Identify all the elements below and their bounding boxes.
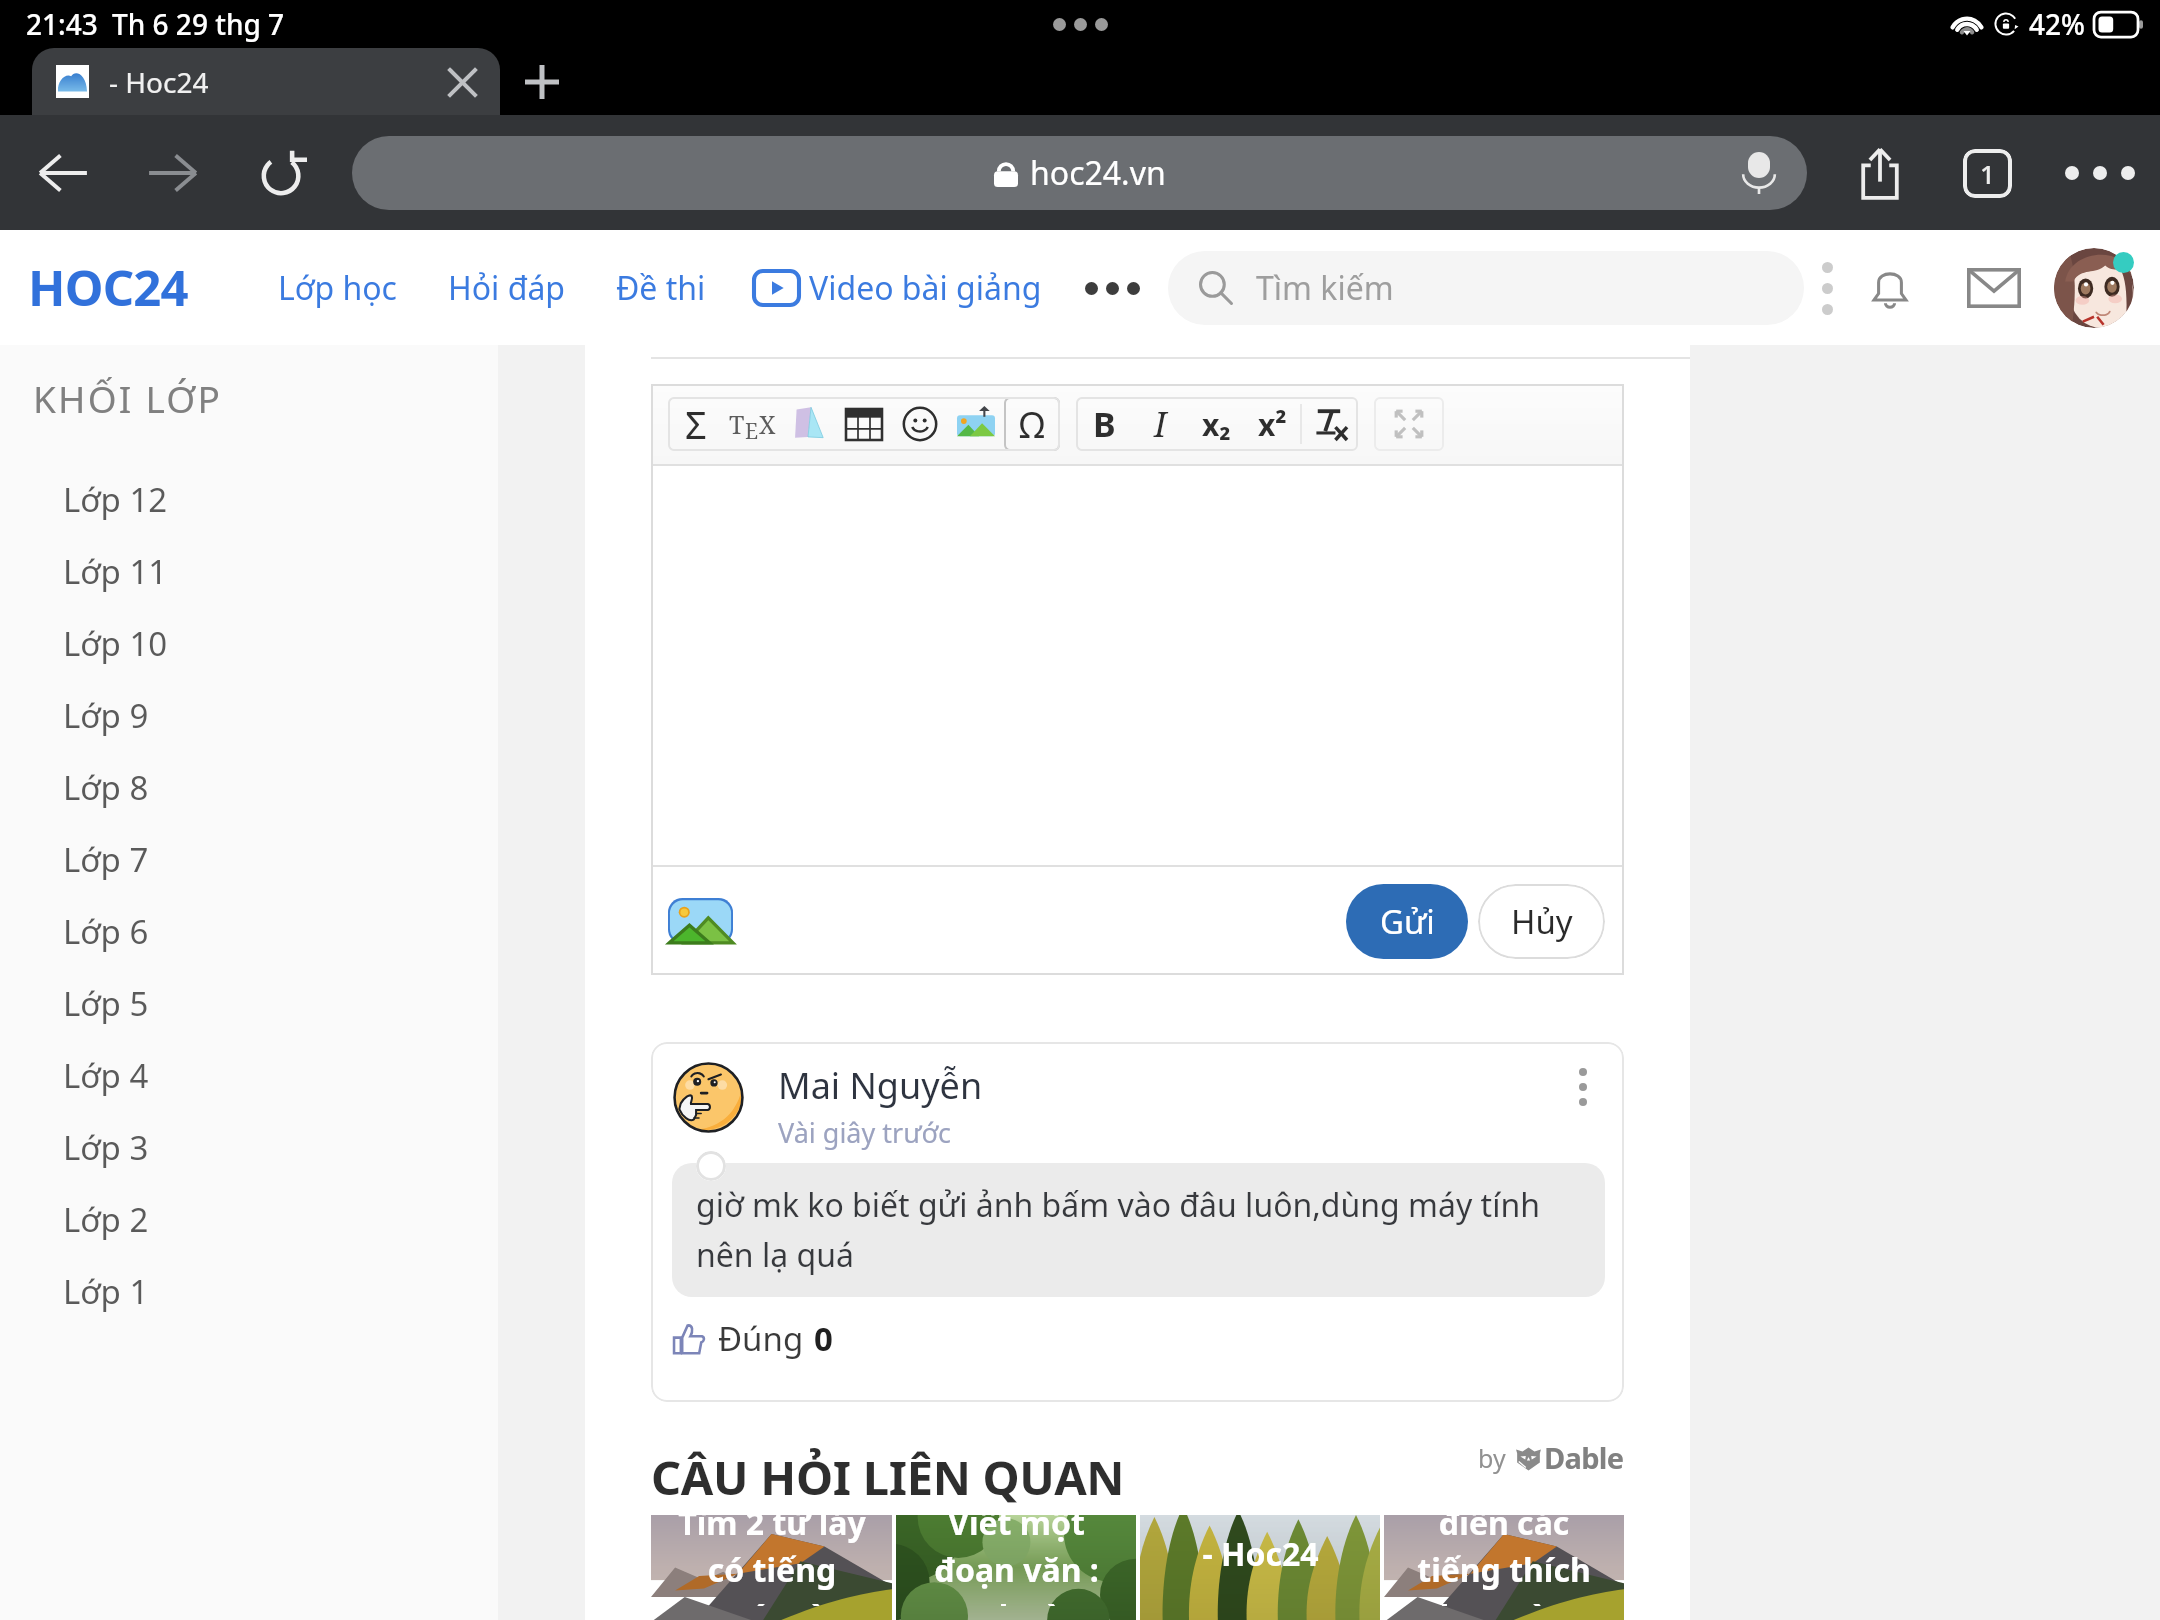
staticText: X [759, 407, 776, 441]
button[interactable]: Gửi [1346, 884, 1468, 959]
button[interactable]: Back [23, 133, 103, 213]
staticText: Lớp 5 [63, 981, 149, 1026]
staticText: HOC24 [28, 254, 188, 321]
staticText: hoc24.vn [1030, 151, 1166, 195]
button[interactable] [836, 397, 892, 451]
button[interactable]: Lớp 2 [0, 1183, 498, 1255]
staticText: by [1478, 1441, 1506, 1475]
button[interactable]: B [1076, 397, 1132, 451]
button[interactable]: Close tab [442, 62, 482, 102]
staticText: Lớp 6 [63, 909, 149, 954]
button[interactable]: Hủy [1478, 884, 1605, 959]
staticText: Hủy [1511, 899, 1573, 944]
button[interactable]: Share [1843, 136, 1917, 210]
button[interactable]: Comment options [1561, 1061, 1605, 1113]
button[interactable]: Fullscreen [1374, 397, 1444, 451]
button[interactable]: Messages [1962, 256, 2026, 320]
staticText: T [729, 407, 745, 441]
button[interactable]: hoc24.vn [352, 136, 1807, 210]
button[interactable]: Lớp 12 [0, 463, 498, 535]
staticText: điền các tiếng thích hợp vào [1417, 1515, 1591, 1606]
button[interactable] [892, 397, 948, 451]
staticText: Đúng [718, 1316, 804, 1361]
staticText: Mai Nguyễn [778, 1061, 983, 1110]
staticText: Lớp 9 [63, 693, 149, 738]
staticText: Lớp 1 [63, 1269, 149, 1314]
button[interactable]: Lớp học [274, 258, 401, 318]
staticText: - Hoc24 [109, 63, 209, 101]
button[interactable]: Lớp 4 [0, 1039, 498, 1111]
staticText: x² [1258, 404, 1287, 445]
button[interactable]: Tìm 2 từ láy có tiếng mát và [651, 1515, 892, 1620]
button[interactable]: - Hoc24 [1140, 1515, 1380, 1620]
staticText: 21:43 [26, 5, 98, 43]
button[interactable]: Reload [243, 133, 323, 213]
staticText: I [1154, 401, 1167, 447]
staticText: Đề thi [616, 266, 706, 310]
button[interactable]: - Hoc24 [32, 48, 500, 115]
staticText: Dable [1544, 1438, 1624, 1477]
button[interactable]: Lớp 6 [0, 895, 498, 967]
button[interactable] [780, 397, 836, 451]
staticText: Lớp học [278, 266, 397, 310]
button[interactable]: Đề thi [612, 258, 710, 318]
staticText: Lớp 10 [63, 621, 168, 666]
staticText: Gửi [1380, 899, 1435, 944]
button[interactable]: More menu [1082, 263, 1142, 313]
staticText: Lớp 7 [63, 837, 149, 882]
staticText: CÂU HỎI LIÊN QUAN [651, 1445, 1125, 1509]
button[interactable]: More options [2058, 131, 2142, 215]
button[interactable]: Lớp 8 [0, 751, 498, 823]
staticText: Th 6 29 thg 7 [112, 5, 285, 43]
button[interactable] [1302, 397, 1358, 451]
button[interactable]: Hỏi đáp [444, 258, 570, 318]
staticText: 1 [1980, 156, 1995, 191]
staticText: 0 [814, 1316, 833, 1361]
button[interactable]: Σ [668, 397, 724, 451]
button[interactable]: Notifications [1858, 256, 1922, 320]
staticText: Vài giây trước [778, 1114, 951, 1151]
button[interactable]: Voice search [1733, 147, 1785, 199]
staticText: Hỏi đáp [448, 266, 566, 310]
button[interactable]: Special characters [1004, 397, 1060, 451]
staticText: Lớp 12 [63, 477, 168, 522]
staticText: Lớp 4 [63, 1053, 149, 1098]
button[interactable]: Lớp 1 [0, 1255, 498, 1327]
staticText: Lớp 3 [63, 1125, 149, 1170]
button[interactable]: New tab [500, 48, 584, 115]
staticText: 42% [2029, 5, 2085, 43]
staticText: Lớp 8 [63, 765, 149, 810]
button[interactable]: Video bài giảng [754, 258, 1042, 318]
button[interactable]: Attach image [668, 895, 733, 947]
button[interactable]: Viết một đoạn văn : em thường [896, 1515, 1136, 1620]
button[interactable]: Lớp 9 [0, 679, 498, 751]
button[interactable]: Lớp 7 [0, 823, 498, 895]
button[interactable]: I [1132, 397, 1188, 451]
staticText: Tìm 2 từ láy có tiếng mát và [678, 1515, 866, 1606]
button[interactable]: Lớp 3 [0, 1111, 498, 1183]
button[interactable]: Lớp 5 [0, 967, 498, 1039]
button[interactable]: Forward [133, 133, 213, 213]
button[interactable]: Lớp 10 [0, 607, 498, 679]
button[interactable]: x₂ [1188, 397, 1244, 451]
staticText: giờ mk ko biết gửi ảnh bấm vào đâu luôn,… [696, 1183, 1583, 1277]
button[interactable]: Options [1804, 255, 1850, 321]
button[interactable] [948, 397, 1004, 451]
staticText: Viết một đoạn văn : em thường [926, 1515, 1107, 1606]
button[interactable]: Lớp 11 [0, 535, 498, 607]
button[interactable]: HOC24 [24, 254, 192, 321]
button[interactable]: Tìm kiếm [1168, 251, 1804, 325]
button[interactable]: điền các tiếng thích hợp vào [1384, 1515, 1624, 1620]
staticText: Lớp 11 [63, 549, 168, 594]
staticText: Lớp 2 [63, 1197, 149, 1242]
button[interactable]: Profile [2054, 248, 2134, 328]
staticText: Video bài giảng [809, 266, 1042, 310]
staticText: E [745, 417, 759, 446]
button[interactable]: Đúng [672, 1314, 833, 1363]
button[interactable]: T [724, 397, 780, 451]
button[interactable]: x² [1244, 397, 1300, 451]
staticText: Ω [1019, 400, 1045, 449]
staticText: Tìm kiếm [1256, 266, 1394, 310]
button[interactable]: Tabs [1950, 136, 2024, 210]
